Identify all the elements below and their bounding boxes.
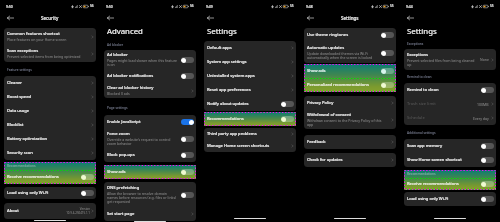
button[interactable] (381, 82, 394, 88)
staticText: Scan app memory (407, 143, 443, 149)
button[interactable]: Personalized recommendations (304, 78, 396, 92)
button[interactable]: About (4, 203, 96, 219)
staticText: Trash size limit (407, 101, 436, 107)
button[interactable]: Common features shortcut (4, 28, 96, 45)
staticText: Battery optimization (7, 136, 48, 142)
button[interactable]: Load using only Wi-Fi (404, 192, 496, 206)
staticText: Set start page (107, 211, 135, 217)
button[interactable]: Show ads (304, 64, 396, 78)
button[interactable]: Back (304, 12, 317, 23)
button[interactable] (481, 181, 494, 187)
button[interactable] (381, 50, 394, 56)
button[interactable]: Show Home screen shortcut (404, 153, 496, 167)
button[interactable]: Privacy Policy (304, 96, 396, 110)
staticText: Load using only Wi-Fi (407, 196, 449, 202)
button[interactable]: Boost speed (4, 90, 96, 104)
button[interactable] (481, 157, 494, 163)
button[interactable]: Check for updates (304, 153, 396, 167)
button[interactable] (281, 101, 294, 107)
button[interactable]: Block pop-ups (104, 148, 196, 162)
staticText: Reset app preferences (207, 87, 251, 93)
button[interactable]: Receive recommendations (404, 178, 496, 190)
button[interactable]: Ad blocker notifications (104, 69, 196, 83)
button[interactable]: Third party app problems (204, 128, 296, 140)
button[interactable]: Use theme ringtones (304, 28, 396, 42)
button[interactable]: Battery optimization (4, 132, 96, 146)
button[interactable]: Notify about updates (204, 97, 296, 111)
button[interactable] (181, 119, 194, 125)
button[interactable]: Security scan (4, 146, 96, 160)
staticText: Recommendations (7, 164, 36, 168)
button[interactable]: Clear ad blocker history (104, 83, 196, 98)
button[interactable]: Schedule (404, 111, 496, 125)
button[interactable]: Back (204, 12, 217, 23)
staticText: Common features shortcut (7, 31, 60, 37)
button[interactable]: Data usage (4, 104, 96, 118)
button[interactable] (81, 190, 94, 196)
button[interactable]: Uninstalled system apps (204, 69, 296, 83)
staticText: Enable JavaScript (107, 119, 141, 125)
button[interactable] (181, 152, 194, 158)
button[interactable] (481, 143, 494, 149)
staticText: 56 (90, 4, 94, 8)
staticText: Boost speed (7, 94, 32, 100)
button[interactable]: System app settings (204, 55, 296, 69)
button[interactable] (381, 68, 394, 74)
staticText: None (480, 57, 489, 62)
button[interactable] (381, 32, 394, 38)
staticText: Data usage (7, 108, 30, 114)
staticText: Show Home screen shortcut (407, 157, 462, 163)
staticText: 9:44 (406, 4, 413, 8)
button[interactable] (181, 192, 194, 198)
button[interactable]: Reset app preferences (204, 83, 296, 97)
button[interactable]: Scan exceptions (4, 45, 96, 62)
button[interactable]: Trash size limit (404, 97, 496, 111)
button[interactable]: Enable JavaScript (104, 115, 196, 129)
button[interactable]: Exceptions (404, 49, 496, 70)
staticText: Automatic updates (307, 45, 345, 51)
staticText: Show ads (107, 169, 126, 175)
button[interactable] (181, 73, 194, 79)
staticText: Update downloaded themes via Wi-Fi autom… (307, 51, 378, 60)
staticText: Manage Home screen shortcuts (207, 143, 270, 149)
button[interactable]: Recommendations (204, 112, 296, 126)
staticText: Check for updates (307, 157, 343, 163)
staticText: 9:50 (6, 4, 13, 8)
button[interactable]: Scan app memory (404, 139, 496, 153)
button[interactable]: Remind to clean (404, 83, 496, 97)
button[interactable]: Back (404, 12, 417, 23)
button[interactable]: Set start page (104, 207, 196, 221)
button[interactable]: Receive recommendations (4, 170, 96, 184)
staticText: Blocked 0 ads (107, 91, 130, 96)
button[interactable] (181, 136, 194, 142)
button[interactable]: Ad blocker (104, 50, 196, 69)
button[interactable]: DNS prefetching (104, 182, 196, 207)
staticText: Use theme ringtones (307, 32, 349, 38)
staticText: 9:48 (306, 4, 313, 8)
button[interactable] (81, 174, 94, 180)
button[interactable]: Feedback (304, 135, 396, 149)
button[interactable]: Manage Home screen shortcuts (204, 140, 296, 152)
button[interactable]: Show ads (104, 165, 196, 179)
button[interactable]: Blocklist (4, 118, 96, 132)
button[interactable] (181, 57, 194, 63)
staticText: Clear ad blocker history (107, 85, 154, 91)
staticText: Security (41, 15, 59, 21)
button[interactable] (481, 196, 494, 202)
button[interactable]: Automatic updates (304, 42, 396, 63)
staticText: Withdrawal of consent (307, 112, 352, 118)
button[interactable]: Cleaner (4, 76, 96, 90)
button[interactable] (281, 116, 294, 122)
staticText: Force zoom (107, 131, 130, 137)
button[interactable]: Back (4, 12, 17, 23)
button[interactable]: Back (104, 12, 117, 23)
button[interactable]: Force zoom (104, 129, 196, 148)
button[interactable] (181, 169, 194, 175)
button[interactable]: Default apps (204, 41, 296, 55)
staticText: Version 10.9.4-250415.1.1 (66, 207, 90, 215)
staticText: Feature settings (7, 68, 32, 72)
staticText: Every day (473, 116, 489, 121)
button[interactable]: Load using only Wi-Fi (4, 187, 96, 199)
button[interactable] (481, 87, 494, 93)
button[interactable]: Withdrawal of consent (304, 110, 396, 129)
